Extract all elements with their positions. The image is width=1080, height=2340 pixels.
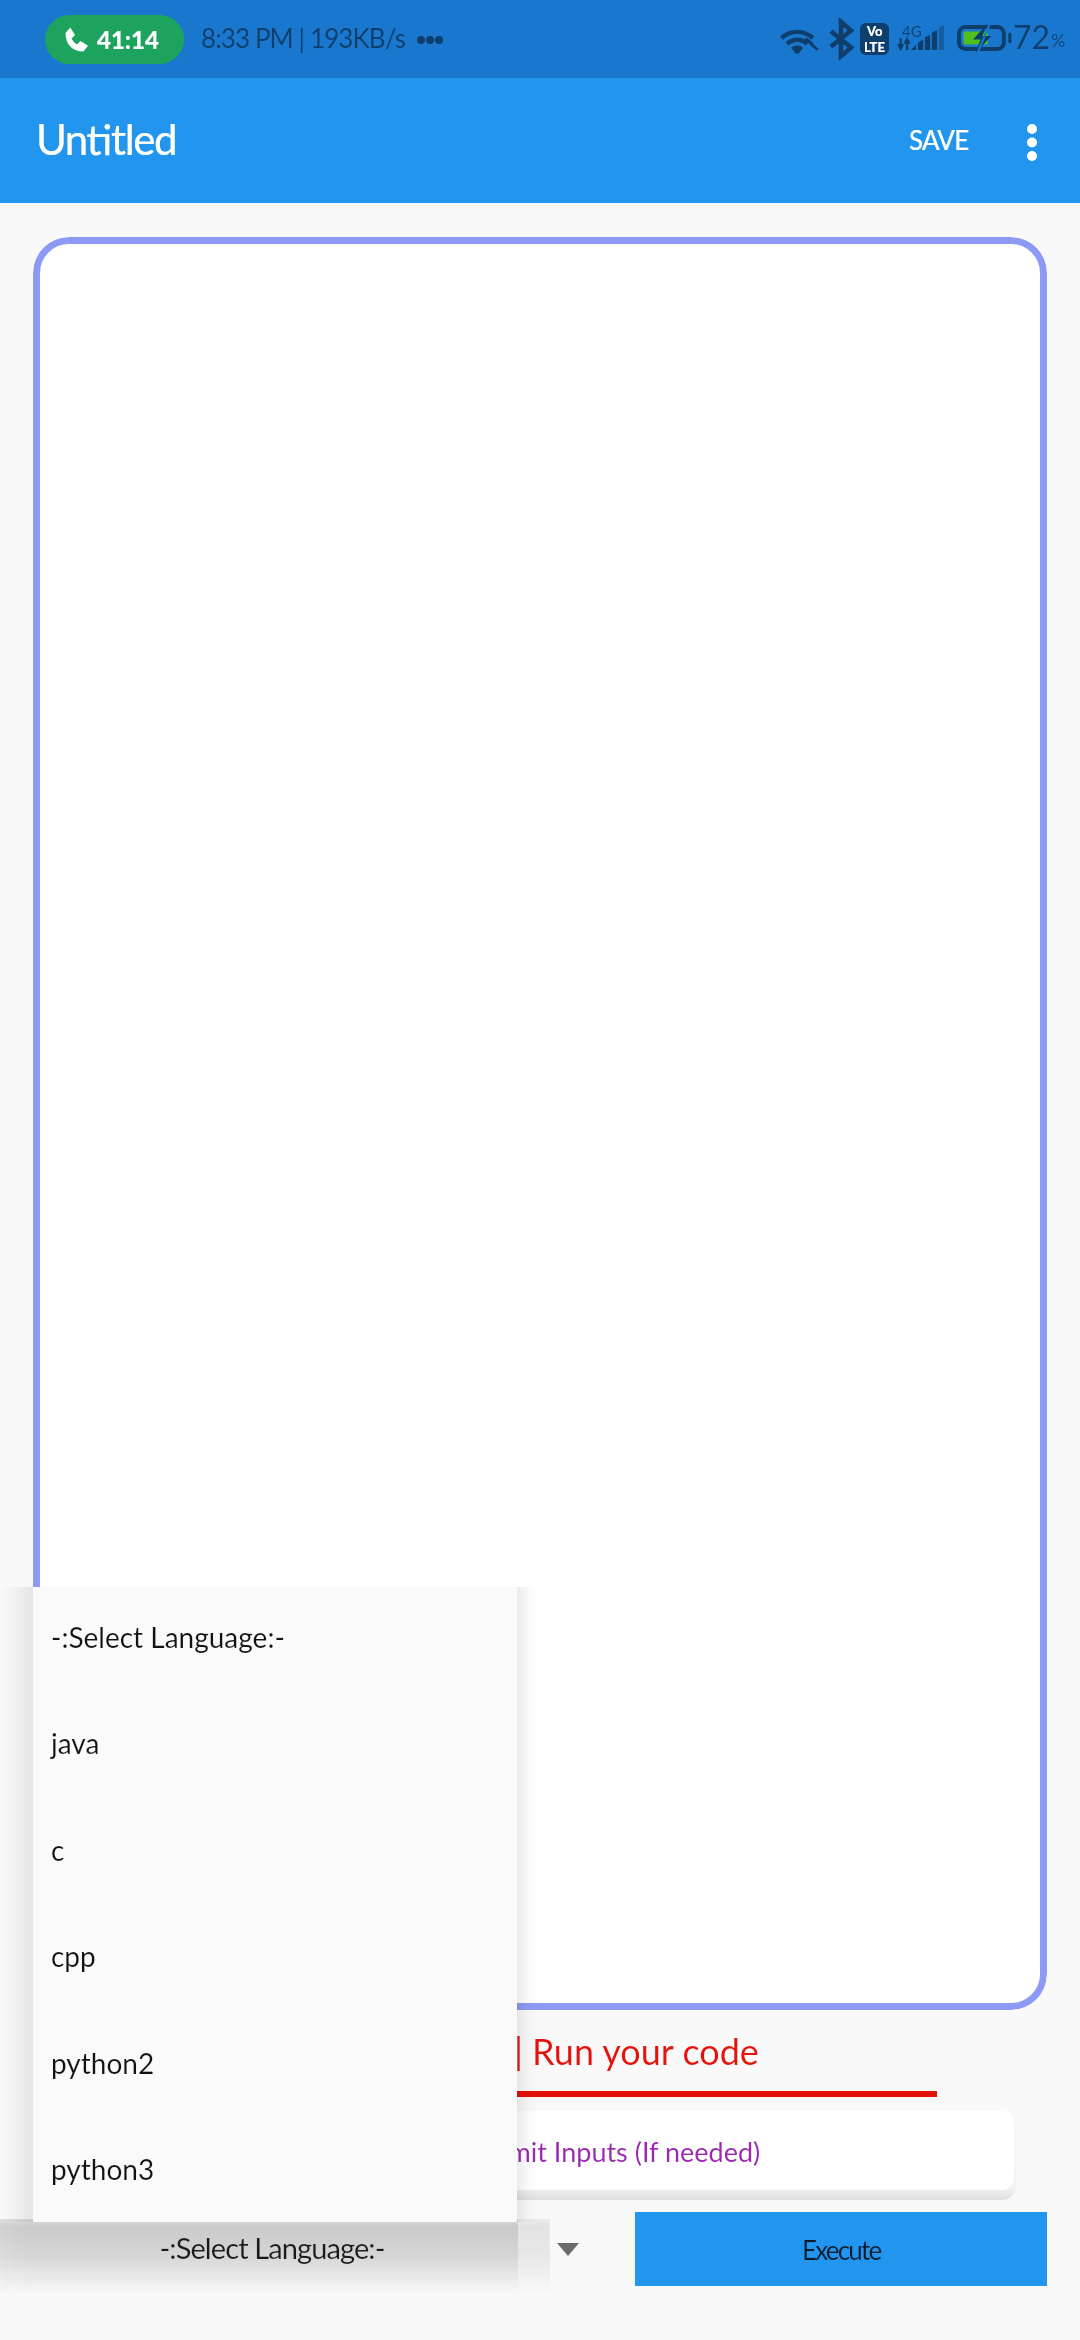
button[interactable]: Submit Inputs (If needed) [66,2111,1014,2190]
staticText: LTE [864,39,885,55]
staticText: 4G [902,22,922,40]
button[interactable]: python3 [33,2130,517,2208]
staticText: python2 [51,2046,155,2080]
staticText: 72 [1013,17,1051,55]
staticText: python3 [51,2152,155,2186]
button[interactable]: -:Select Language:- [33,1598,517,1676]
staticText: java [51,1726,100,1760]
button[interactable]: cpp [33,1917,517,1995]
staticText: Untitled [36,114,177,164]
button[interactable]: -:Select Language:- [33,2220,614,2292]
staticText: -:Select Language:- [30,2230,514,2265]
button[interactable]: java [33,1704,517,1782]
staticText: Vo [867,23,883,39]
staticText: Run your code [532,2029,759,2072]
button[interactable]: python2 [33,2024,517,2102]
button[interactable]: c [33,1811,517,1889]
staticText: Execute [802,2234,881,2265]
button[interactable]: More options [996,98,1068,186]
staticText: cpp [51,1939,96,1973]
staticText: -:Select Language:- [51,1620,285,1654]
staticText: Submit Inputs (If needed) [464,2135,761,2167]
staticText: 8:33 PM | 193KB/s [201,22,405,53]
button[interactable] [33,237,1047,2010]
staticText: | [514,2029,524,2072]
staticText: % [1051,29,1066,51]
staticText: c [51,1833,65,1867]
staticText: 41:14 [97,25,159,54]
button[interactable]: SAVE [882,106,996,172]
button[interactable]: Execute [635,2212,1047,2286]
staticText: SAVE [909,124,969,155]
